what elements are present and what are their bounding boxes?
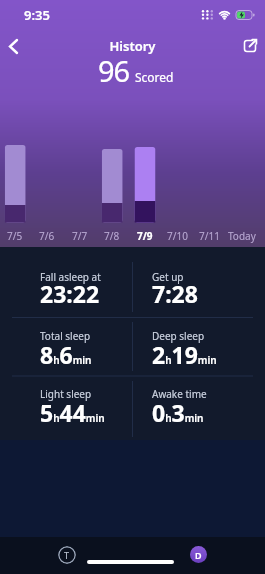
staticText: 7/9 xyxy=(137,229,153,243)
staticText: 7/6 xyxy=(39,229,55,243)
button[interactable]: 7/5 xyxy=(0,228,31,244)
staticText: 7/10 xyxy=(167,229,188,243)
staticText: 7:28 xyxy=(152,278,198,309)
staticText: 7/11 xyxy=(199,229,220,243)
staticText: 7/5 xyxy=(7,229,23,243)
staticText: Light sleep xyxy=(40,387,92,401)
staticText: Scored xyxy=(135,69,174,85)
button[interactable]: T xyxy=(58,546,76,564)
staticText: 5h44min xyxy=(40,397,105,428)
button[interactable]: 7/10 xyxy=(161,228,193,244)
button[interactable]: Today xyxy=(226,228,258,244)
button[interactable]: 7/7 xyxy=(64,228,96,244)
staticText: Today xyxy=(228,229,256,243)
button[interactable]: 7/9 xyxy=(129,228,161,244)
staticText: D xyxy=(195,549,202,561)
staticText: Awake time xyxy=(152,387,207,401)
staticText: Fall asleep at xyxy=(40,270,101,284)
staticText: T xyxy=(64,549,70,561)
staticText: 2h19min xyxy=(152,339,217,370)
staticText: 23:22 xyxy=(40,278,100,309)
staticText: Get up xyxy=(152,270,184,284)
staticText: 0h3min xyxy=(152,397,204,428)
button[interactable] xyxy=(236,32,264,58)
staticText: Deep sleep xyxy=(152,329,205,343)
button[interactable]: 7/8 xyxy=(96,228,128,244)
staticText: 9:35 xyxy=(24,6,50,24)
button[interactable]: 7/11 xyxy=(193,228,225,244)
button[interactable]: D xyxy=(190,546,207,563)
staticText: Total sleep xyxy=(40,329,91,343)
staticText: 96 xyxy=(98,51,130,90)
button[interactable] xyxy=(0,35,26,57)
staticText: History xyxy=(0,37,265,55)
button[interactable]: 7/6 xyxy=(31,228,63,244)
staticText: 7/7 xyxy=(72,229,88,243)
staticText: 7/8 xyxy=(104,229,120,243)
staticText: 8h6min xyxy=(40,339,92,370)
